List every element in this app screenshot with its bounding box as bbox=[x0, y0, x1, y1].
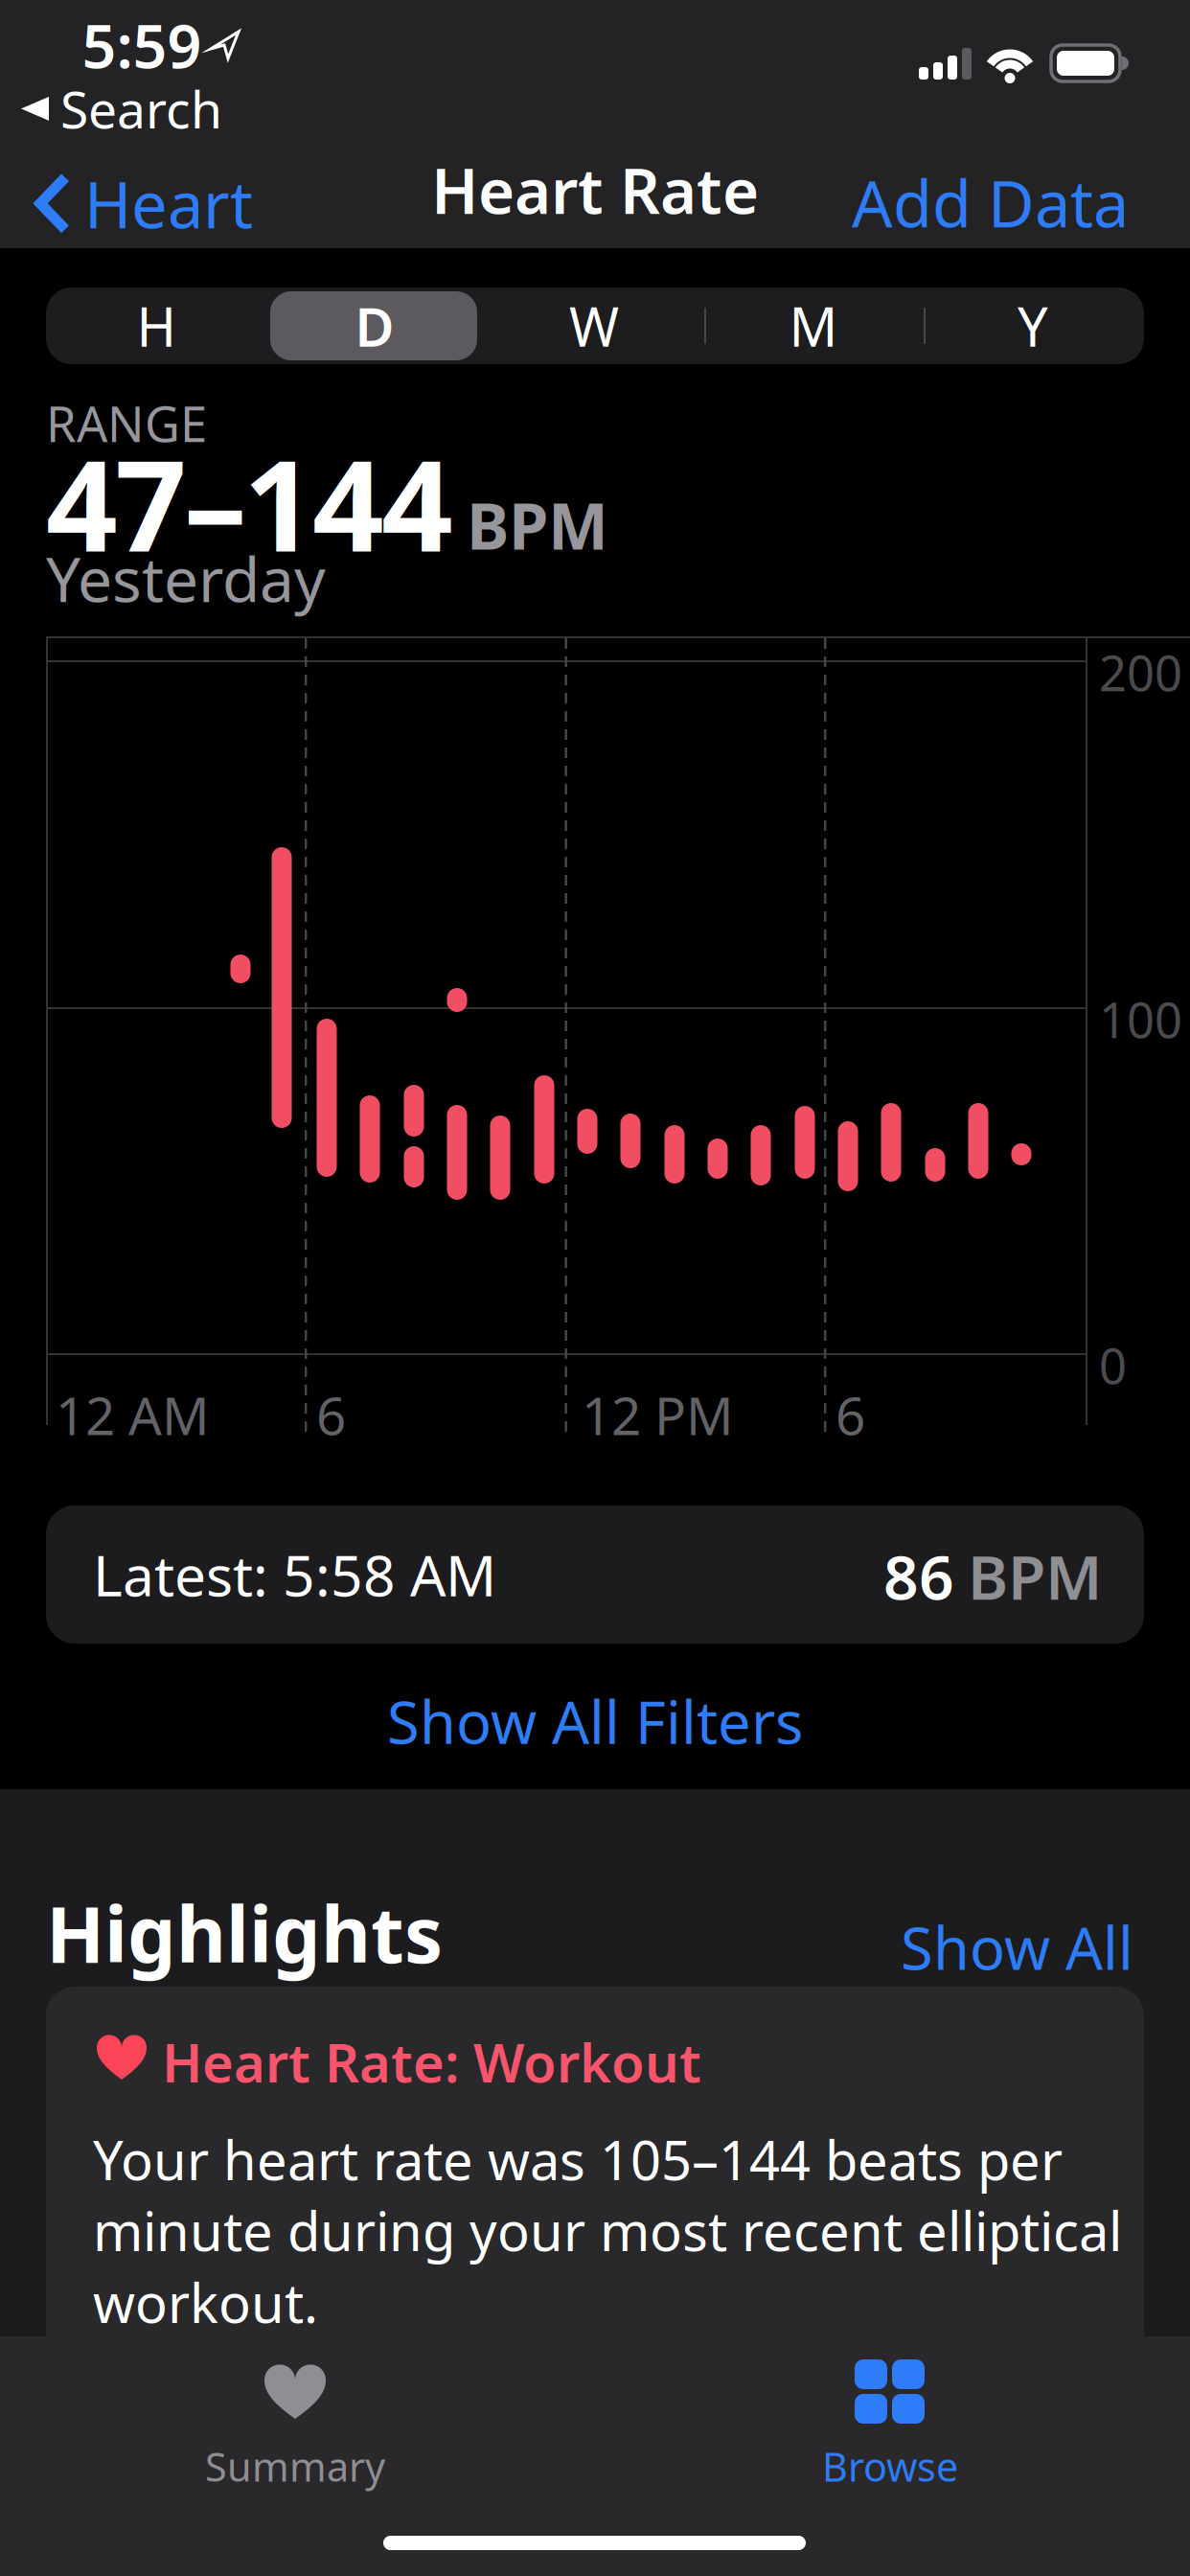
staticText: H bbox=[137, 290, 176, 361]
button[interactable]: M bbox=[704, 287, 923, 364]
staticText: workout. bbox=[93, 2266, 318, 2338]
staticText: BPM bbox=[467, 482, 608, 567]
staticText: Heart Rate bbox=[431, 148, 759, 231]
staticText: 12 PM bbox=[582, 1380, 734, 1450]
button[interactable]: Back to Heart bbox=[40, 161, 253, 246]
staticText: minute during your most recent elliptica… bbox=[93, 2195, 1122, 2266]
button[interactable]: Show All Filters bbox=[387, 1682, 803, 1760]
staticText: 200 bbox=[1099, 640, 1182, 705]
staticText: Heart Rate: Workout bbox=[162, 2026, 701, 2097]
button[interactable]: Back to Search bbox=[21, 75, 222, 143]
staticText: Show All bbox=[901, 1908, 1133, 1986]
staticText: Search bbox=[60, 75, 222, 143]
staticText: Heart bbox=[84, 161, 253, 246]
button[interactable]: H bbox=[46, 287, 266, 364]
staticText: Yesterday bbox=[46, 538, 326, 619]
staticText: 100 bbox=[1099, 987, 1182, 1052]
staticText: 5:59 bbox=[82, 5, 202, 85]
button[interactable]: Summary bbox=[175, 2336, 415, 2490]
staticText: RANGE bbox=[46, 391, 207, 455]
staticText: Show All Filters bbox=[387, 1682, 803, 1760]
button[interactable]: Browse bbox=[770, 2336, 1010, 2490]
button[interactable]: Add Data bbox=[745, 160, 1129, 245]
staticText: Your heart rate was 105–144 beats per bbox=[93, 2124, 1063, 2195]
staticText: 12 AM bbox=[56, 1380, 210, 1450]
staticText: 47–144 bbox=[46, 420, 453, 586]
staticText: 6 bbox=[835, 1380, 865, 1450]
staticText: BPM bbox=[968, 1535, 1102, 1617]
staticText: Y bbox=[1018, 290, 1048, 361]
staticText: W bbox=[569, 290, 619, 361]
staticText: M bbox=[789, 290, 838, 361]
staticText: 6 bbox=[316, 1380, 346, 1450]
staticText: 86 bbox=[883, 1535, 954, 1617]
staticText: D bbox=[355, 290, 394, 361]
button[interactable]: Show All bbox=[846, 1908, 1133, 1986]
staticText: Latest: 5:58 AM bbox=[93, 1537, 496, 1612]
button[interactable]: W bbox=[484, 287, 704, 364]
staticText: Add Data bbox=[852, 160, 1129, 245]
staticText: Browse bbox=[822, 2440, 958, 2493]
button[interactable]: Heart Rate: Workout bbox=[46, 1987, 1144, 2396]
staticText: Summary bbox=[205, 2440, 385, 2493]
staticText: 0 bbox=[1099, 1333, 1127, 1398]
button[interactable]: Y bbox=[923, 287, 1143, 364]
staticText: Highlights bbox=[46, 1882, 443, 1984]
button[interactable]: D bbox=[265, 287, 484, 364]
